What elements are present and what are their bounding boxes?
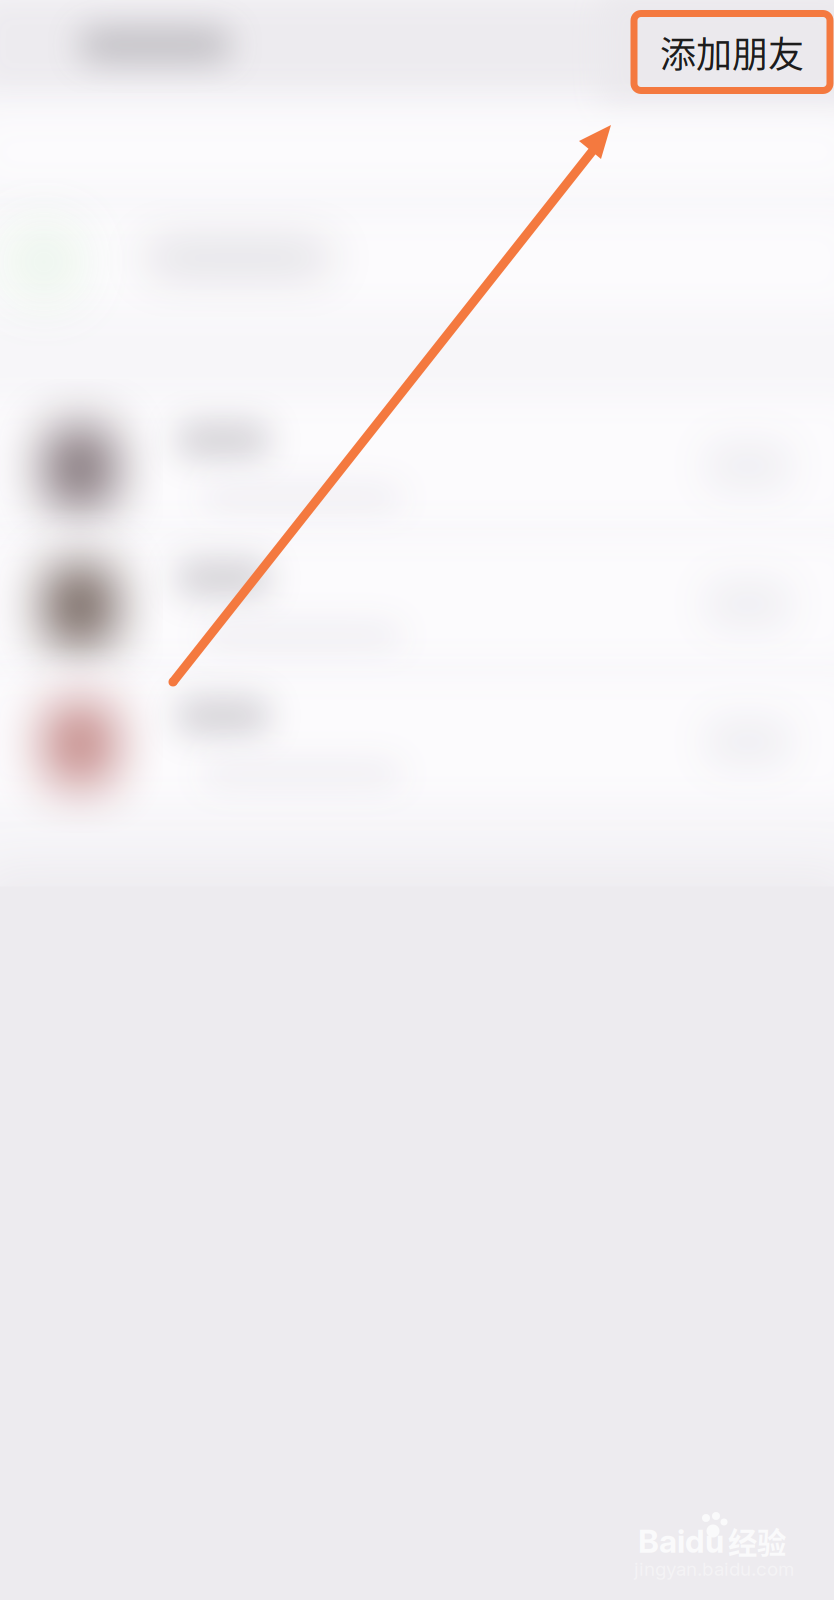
button[interactable]: 添加朋友 — [634, 13, 830, 90]
staticText: Baidu — [638, 1522, 724, 1560]
staticText: 添加朋友 — [660, 26, 804, 78]
staticText: 经验 — [728, 1520, 786, 1562]
